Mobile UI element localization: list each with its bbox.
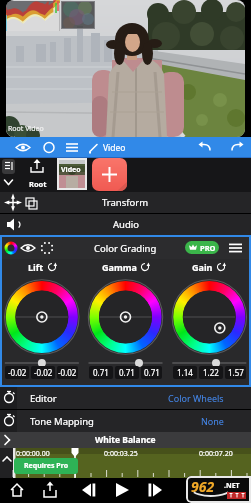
button[interactable]: Requires Pro [14, 458, 78, 474]
button[interactable] [78, 478, 102, 503]
staticText: 962 [191, 477, 215, 496]
staticText: Color Wheels [168, 392, 224, 404]
staticText: 0.71 [93, 367, 109, 378]
button[interactable] [0, 137, 26, 158]
staticText: -0.02 [58, 367, 77, 378]
staticText: Requires Pro [24, 461, 69, 471]
button[interactable] [195, 137, 221, 158]
staticText: Video [61, 165, 81, 175]
staticText: Transform [102, 196, 149, 209]
button[interactable]: Tone Mapping [0, 410, 251, 432]
button[interactable]: Root [20, 159, 55, 191]
staticText: -0.02 [34, 367, 53, 378]
staticText: PRO [200, 243, 216, 253]
button[interactable]: Video [57, 158, 87, 190]
staticText: Editor [30, 392, 57, 405]
button[interactable] [144, 478, 168, 503]
button[interactable]: Transform [0, 192, 251, 213]
staticText: Root Video [8, 124, 44, 134]
staticText: 0:00:00.00 [16, 449, 50, 459]
button[interactable]: Audio [0, 214, 251, 235]
staticText: Tone Mapping [30, 415, 94, 428]
button[interactable]: White Balance [0, 432, 251, 448]
button[interactable] [92, 158, 127, 191]
staticText: Lift [28, 261, 44, 273]
staticText: Gain [192, 261, 213, 273]
button[interactable] [78, 137, 104, 158]
staticText: None [201, 415, 224, 427]
staticText: 1.14 [177, 367, 193, 378]
button[interactable] [226, 137, 251, 158]
staticText: 1.57 [228, 367, 244, 378]
button[interactable] [40, 478, 64, 503]
button[interactable] [2, 159, 15, 174]
button[interactable]: PRO [185, 241, 219, 254]
staticText: 0:00:07.20 [199, 449, 233, 459]
staticText: Gamma [102, 261, 137, 273]
staticText: Video [103, 142, 126, 154]
button[interactable] [26, 137, 52, 158]
button[interactable] [6, 478, 30, 503]
staticText: 0.71 [144, 367, 160, 378]
button[interactable]: 962 [186, 476, 251, 503]
staticText: -0.02 [8, 367, 27, 378]
staticText: 0:00:03.25 [104, 449, 138, 459]
staticText: 0.71 [119, 367, 135, 378]
button[interactable] [52, 137, 78, 158]
staticText: 1.22 [203, 367, 219, 378]
staticText: White Balance [95, 434, 156, 446]
button[interactable] [110, 478, 134, 503]
button[interactable]: Color Grading [2, 237, 249, 259]
staticText: Root [29, 179, 47, 189]
staticText: Color Grading [94, 242, 157, 255]
staticText: Audio [113, 218, 139, 231]
button[interactable]: Root Video [6, 0, 245, 137]
button[interactable]: Editor [0, 387, 251, 409]
staticText: .NET [224, 481, 240, 491]
